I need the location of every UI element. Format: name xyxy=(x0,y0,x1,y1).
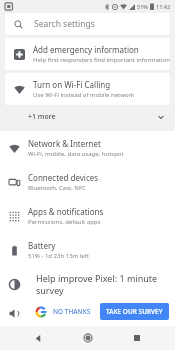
button[interactable]: Battery xyxy=(0,233,175,267)
staticText: Display xyxy=(28,274,56,285)
staticText: Permissions, default apps xyxy=(28,218,101,226)
button[interactable]: Connected devices xyxy=(0,165,175,199)
staticText: 51% - 1d 23h 13m left xyxy=(28,252,89,260)
staticText: 11:42 xyxy=(156,3,171,10)
staticText: Wallpaper, sleep, font size xyxy=(28,286,101,294)
button[interactable]: TAKE OUR SURVEY xyxy=(100,303,169,320)
button[interactable]: NO THANKS xyxy=(48,304,96,319)
button[interactable]: Turn on Wi-Fi Calling xyxy=(5,73,170,105)
staticText: +1 more xyxy=(28,112,56,122)
button[interactable]: Apps & notifications xyxy=(0,199,175,233)
staticText: Connected devices xyxy=(28,172,99,183)
staticText: Battery xyxy=(28,240,56,251)
button[interactable]: Recents xyxy=(125,326,149,350)
button[interactable]: Search settings xyxy=(5,13,170,35)
staticText: Help improve Pixel: 1 minute survey xyxy=(36,272,169,296)
staticText: TAKE OUR SURVEY xyxy=(106,307,163,316)
button[interactable]: Home xyxy=(76,326,100,350)
other: Google xyxy=(36,307,46,317)
staticText: 51% xyxy=(137,3,148,10)
staticText: Wi-Fi, mobile, data usage, hotspot xyxy=(28,150,124,158)
staticText: Use Wi-Fi instead of mobile network xyxy=(33,91,135,99)
button[interactable]: Add emergency information xyxy=(5,38,170,70)
staticText: Turn on Wi-Fi Calling xyxy=(33,79,111,90)
staticText: Apps & notifications xyxy=(28,206,104,217)
staticText: Sound xyxy=(28,308,53,319)
staticText: Help first responders find important inf… xyxy=(33,56,170,64)
button[interactable]: Sound xyxy=(0,301,175,326)
staticText: NO THANKS xyxy=(53,307,91,316)
staticText: Search settings xyxy=(34,18,95,30)
button[interactable]: Back xyxy=(26,326,50,350)
button[interactable]: Display xyxy=(0,267,175,301)
staticText: Bluetooth, Cast, NFC xyxy=(28,184,86,192)
staticText: Network & Internet xyxy=(28,138,101,149)
button[interactable]: +1 more xyxy=(0,105,175,129)
staticText: Add emergency information xyxy=(33,44,139,55)
button[interactable]: Network & Internet xyxy=(0,131,175,165)
